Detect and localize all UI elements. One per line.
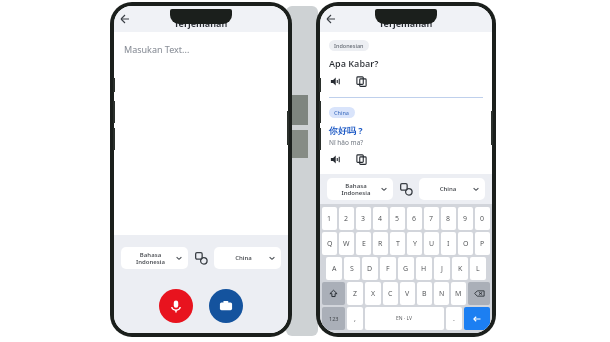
staticText: P: [480, 239, 485, 249]
button[interactable]: 7: [424, 207, 439, 230]
staticText: J: [441, 264, 443, 274]
staticText: X: [371, 289, 376, 299]
button[interactable]: Swap languages: [393, 178, 419, 200]
button[interactable]: China: [419, 178, 485, 200]
staticText: S: [350, 264, 354, 274]
button[interactable]: I: [441, 232, 456, 255]
button[interactable]: O: [458, 232, 473, 255]
button[interactable]: Z: [347, 282, 363, 305]
button[interactable]: F: [380, 257, 396, 280]
staticText: Z: [353, 289, 358, 299]
staticText: 4: [378, 214, 383, 224]
staticText: 1: [327, 214, 332, 224]
button[interactable]: Back: [117, 11, 133, 27]
button[interactable]: 6: [407, 207, 422, 230]
staticText: V: [405, 289, 410, 299]
staticText: Indonesian: [334, 42, 364, 49]
button[interactable]: K: [452, 257, 468, 280]
staticText: E: [362, 239, 366, 249]
staticText: U: [429, 239, 435, 249]
button[interactable]: P: [475, 232, 490, 255]
staticText: 7: [429, 214, 434, 224]
button[interactable]: M: [451, 282, 466, 305]
button[interactable]: R: [373, 232, 388, 255]
button[interactable]: S: [344, 257, 360, 280]
button[interactable]: L: [470, 257, 486, 280]
button[interactable]: V: [400, 282, 415, 305]
staticText: Y: [413, 239, 417, 249]
button[interactable]: Copy: [355, 153, 368, 166]
staticText: B: [422, 289, 427, 299]
staticText: China: [424, 185, 472, 193]
staticText: Bahasa Indonesia: [332, 182, 380, 197]
button[interactable]: W: [339, 232, 354, 255]
button[interactable]: A: [326, 257, 342, 280]
staticText: China: [219, 254, 268, 262]
staticText: G: [403, 264, 409, 274]
button[interactable]: G: [398, 257, 414, 280]
button[interactable]: 8: [441, 207, 456, 230]
button[interactable]: 5: [390, 207, 405, 230]
button[interactable]: X: [365, 282, 381, 305]
staticText: 0: [480, 214, 485, 224]
staticText: N: [439, 289, 445, 299]
button[interactable]: 3: [356, 207, 371, 230]
button[interactable]: Camera: [209, 289, 243, 323]
staticText: 5: [395, 214, 400, 224]
button[interactable]: China: [214, 247, 281, 269]
staticText: A: [332, 264, 337, 274]
button[interactable]: E: [356, 232, 371, 255]
button[interactable]: Microphone: [159, 289, 193, 323]
button[interactable]: .: [446, 307, 462, 330]
staticText: Terjemahan: [174, 17, 228, 29]
button[interactable]: D: [362, 257, 378, 280]
staticText: 6: [412, 214, 417, 224]
button[interactable]: Enter: [464, 307, 490, 330]
button[interactable]: C: [383, 282, 398, 305]
button[interactable]: B: [417, 282, 432, 305]
button[interactable]: U: [424, 232, 439, 255]
staticText: K: [458, 264, 463, 274]
button[interactable]: N: [434, 282, 449, 305]
button[interactable]: EN · LV: [365, 307, 444, 330]
button[interactable]: Y: [407, 232, 422, 255]
staticText: H: [421, 264, 427, 274]
staticText: F: [386, 264, 390, 274]
button[interactable]: Bahasa Indonesia: [327, 178, 393, 200]
staticText: Q: [327, 239, 333, 249]
button[interactable]: J: [434, 257, 450, 280]
staticText: L: [476, 264, 480, 274]
button[interactable]: T: [390, 232, 405, 255]
staticText: I: [447, 239, 450, 249]
staticText: M: [455, 289, 462, 299]
staticText: .: [453, 314, 455, 324]
button[interactable]: Key: [468, 282, 490, 305]
button[interactable]: Back: [323, 11, 339, 27]
staticText: Masukan Text...: [124, 43, 190, 55]
staticText: D: [367, 264, 373, 274]
button[interactable]: 9: [458, 207, 473, 230]
button[interactable]: 123: [322, 307, 345, 330]
staticText: 8: [446, 214, 451, 224]
button[interactable]: Q: [322, 232, 337, 255]
staticText: 9: [463, 214, 468, 224]
button[interactable]: 4: [373, 207, 388, 230]
staticText: R: [378, 239, 383, 249]
button[interactable]: Speak: [329, 75, 342, 88]
staticText: 123: [329, 315, 339, 322]
button[interactable]: Key: [322, 282, 345, 305]
staticText: O: [463, 239, 469, 249]
staticText: Bahasa Indonesia: [126, 251, 175, 266]
staticText: W: [343, 239, 350, 249]
button[interactable]: 2: [339, 207, 354, 230]
button[interactable]: H: [416, 257, 432, 280]
staticText: Apa Kabar?: [329, 57, 379, 69]
button[interactable]: Swap languages: [188, 247, 214, 269]
button[interactable]: ,: [347, 307, 363, 330]
button[interactable]: Bahasa Indonesia: [121, 247, 188, 269]
button[interactable]: 1: [322, 207, 337, 230]
staticText: 3: [361, 214, 366, 224]
button[interactable]: Copy: [355, 75, 368, 88]
button[interactable]: Speak: [329, 153, 342, 166]
button[interactable]: 0: [475, 207, 490, 230]
